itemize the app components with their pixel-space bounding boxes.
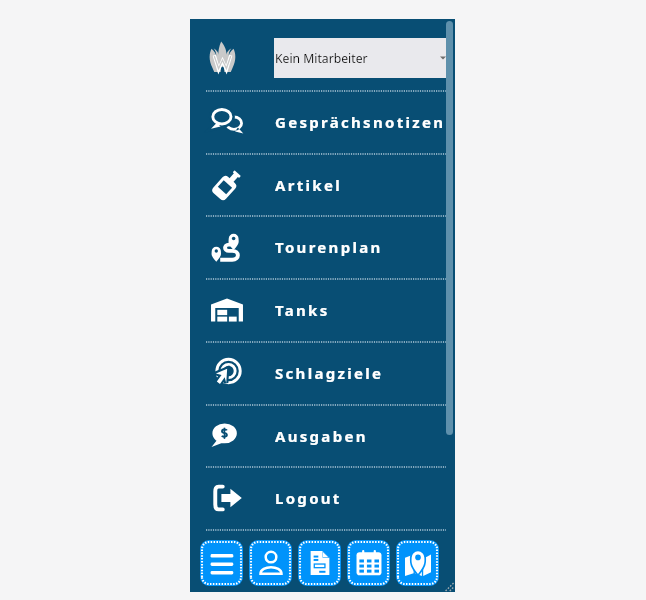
button[interactable]: Documents: [298, 540, 341, 586]
button[interactable]: Schlagziele: [190, 341, 455, 404]
button[interactable]: Logout: [190, 466, 455, 529]
staticText: Schlagziele: [275, 363, 384, 383]
button[interactable]: Ausgaben: [190, 404, 455, 467]
button[interactable]: Calendar: [347, 540, 390, 586]
button[interactable]: Tanks: [190, 278, 455, 341]
staticText: Logout: [275, 488, 342, 508]
staticText: Gesprächsnotizen: [275, 112, 446, 132]
staticText: Tourenplan: [275, 237, 383, 257]
staticText: Ausgaben: [275, 426, 368, 446]
button[interactable]: Contacts: [249, 540, 292, 586]
button[interactable]: Gesprächsnotizen: [190, 90, 455, 153]
button[interactable]: Menu: [200, 540, 243, 586]
button[interactable]: Kein Mitarbeiter: [274, 38, 450, 78]
button[interactable]: Map: [396, 540, 439, 586]
staticText: Tanks: [275, 300, 330, 320]
staticText: Kein Mitarbeiter: [275, 50, 368, 67]
button[interactable]: Tourenplan: [190, 215, 455, 278]
staticText: Artikel: [275, 175, 342, 195]
button[interactable]: Artikel: [190, 153, 455, 216]
